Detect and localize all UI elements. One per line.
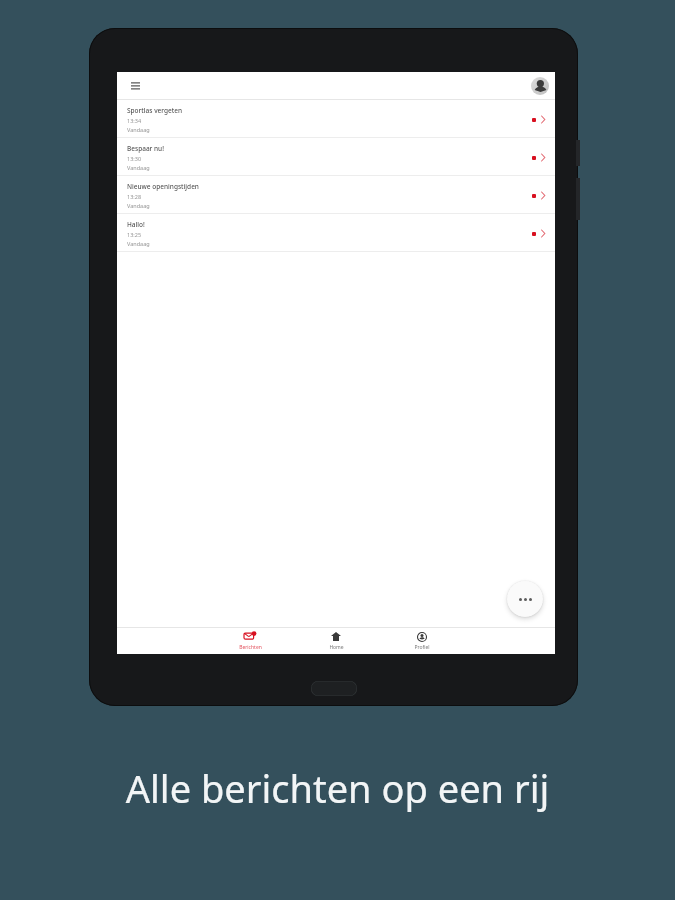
staticText: Sportlas vergeten	[127, 106, 183, 115]
button[interactable]: Nieuwe openingstijden	[117, 176, 555, 214]
staticText: Hallo!	[127, 220, 145, 229]
staticText: Bespaar nu!	[127, 144, 164, 153]
staticText: Berichten	[239, 644, 262, 651]
button[interactable]: Sportlas vergeten	[117, 100, 555, 138]
button[interactable]: Hallo!	[117, 214, 555, 252]
button[interactable]: Berichten	[207, 629, 293, 653]
staticText: Vandaag	[127, 202, 150, 209]
button[interactable]: More options	[507, 581, 543, 617]
staticText: Home	[329, 644, 344, 651]
staticText: Nieuwe openingstijden	[127, 182, 199, 191]
staticText: 13:34	[127, 117, 142, 124]
button[interactable]: Menu	[125, 76, 145, 96]
staticText: Vandaag	[127, 126, 150, 133]
staticText: 13:25	[127, 231, 142, 238]
button[interactable]: Profiel	[379, 629, 465, 653]
staticText: Vandaag	[127, 240, 150, 247]
staticText: Vandaag	[127, 164, 150, 171]
staticText: Alle berichten op een rij	[0, 762, 675, 814]
button[interactable]: Bespaar nu!	[117, 138, 555, 176]
staticText: Profiel	[414, 644, 430, 651]
button[interactable]: Home	[293, 629, 379, 653]
staticText: 13:28	[127, 193, 142, 200]
button[interactable]: Home button	[311, 681, 357, 696]
button[interactable]: Profile avatar	[531, 77, 549, 95]
staticText: 13:30	[127, 155, 142, 162]
